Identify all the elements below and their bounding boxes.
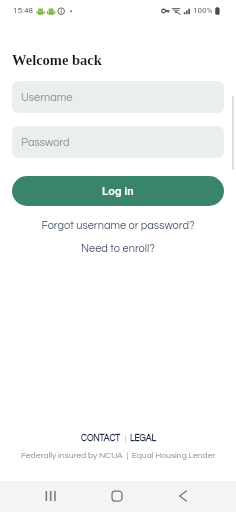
button[interactable]: Home [101,480,133,511]
staticText: 15:48 [13,6,33,15]
staticText: Federally insured by NCUA | Equal Housin… [21,451,216,460]
staticText: | [121,434,130,443]
staticText: Forgot username or password? [41,220,195,231]
button[interactable]: Username [12,81,224,113]
button[interactable]: Back [167,480,199,511]
button[interactable]: Need to enroll? [81,243,155,254]
staticText: 100% [193,6,213,15]
button[interactable]: Recent apps [35,480,67,511]
button[interactable]: Log in [12,176,224,206]
staticText: Need to enroll? [81,243,155,254]
button[interactable]: LEGAL [130,434,156,443]
button[interactable]: CONTACT [81,434,121,443]
staticText: Log in [102,184,134,198]
staticText: Welcome back [12,52,102,68]
button[interactable]: Forgot username or password? [41,220,195,231]
button[interactable]: Password [12,126,224,158]
staticText: Username [21,92,73,103]
staticText: Password [21,137,70,148]
